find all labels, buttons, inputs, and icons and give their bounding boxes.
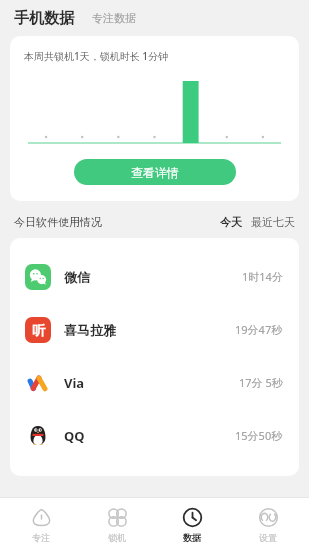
staticText: 本周共锁机1天，锁机时长 1分钟 xyxy=(24,49,169,63)
staticText: 喜马拉雅 xyxy=(64,322,116,338)
button[interactable]: 最近七天 xyxy=(251,215,295,229)
staticText: 1时14分 xyxy=(242,269,283,284)
staticText: 专注 xyxy=(32,532,50,543)
staticText: 今天 xyxy=(220,215,242,229)
staticText: 专注数据 xyxy=(92,11,136,25)
button[interactable]: 专注 xyxy=(6,498,76,550)
button[interactable]: 听 xyxy=(10,303,299,356)
staticText: 设置 xyxy=(259,532,277,543)
staticText: 手机数据 xyxy=(14,9,74,28)
staticText: 今日软件使用情况 xyxy=(14,215,102,229)
button[interactable]: 查看详情 xyxy=(74,159,236,185)
staticText: 数据 xyxy=(183,532,201,543)
staticText: 最近七天 xyxy=(251,215,295,229)
button[interactable]: 手机数据 xyxy=(14,9,74,28)
button[interactable]: QQ xyxy=(10,409,299,462)
staticText: 锁机 xyxy=(108,532,126,543)
button[interactable]: 锁机 xyxy=(82,498,152,550)
staticText: 19分47秒 xyxy=(235,322,283,337)
staticText: Via xyxy=(64,374,85,392)
button[interactable]: 专注数据 xyxy=(92,11,136,25)
staticText: 15分50秒 xyxy=(235,428,283,443)
staticText: QQ xyxy=(64,427,85,445)
staticText: 微信 xyxy=(64,269,90,285)
staticText: 查看详情 xyxy=(131,165,179,180)
button[interactable]: 微信 xyxy=(10,250,299,303)
button[interactable]: Via xyxy=(10,356,299,409)
button[interactable]: 今天 xyxy=(220,215,242,229)
button[interactable]: 设置 xyxy=(233,498,303,550)
button[interactable]: 数据 xyxy=(157,498,227,550)
staticText: 17分 5秒 xyxy=(239,375,283,390)
staticText: 听 xyxy=(32,322,45,338)
